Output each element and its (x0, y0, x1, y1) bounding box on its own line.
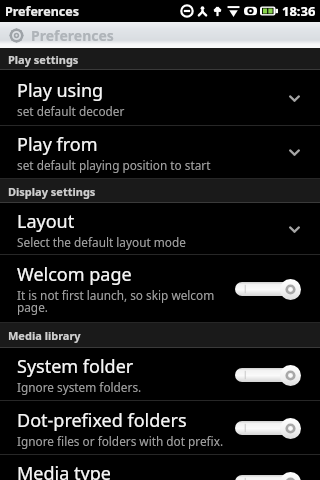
staticText: Layout (17, 209, 75, 234)
button[interactable]: Play using (0, 70, 320, 126)
button[interactable]: System folder (0, 348, 320, 401)
staticText: Media library (8, 328, 81, 343)
staticText: Ignore system folders. (17, 379, 142, 395)
staticText: Media type (17, 461, 111, 480)
staticText: Display settings (8, 184, 96, 199)
button[interactable]: Dot-prefixed folders (0, 401, 320, 455)
staticText: 18:36 (282, 2, 316, 20)
button[interactable]: Play from (0, 126, 320, 179)
button[interactable]: Toggle (235, 364, 301, 386)
button[interactable]: Toggle (235, 278, 301, 300)
staticText: Preferences (5, 3, 79, 20)
staticText: Ignore files or folders with dot prefix. (17, 433, 224, 449)
button[interactable]: Media type (0, 455, 320, 480)
staticText: set default decoder (17, 103, 125, 119)
button[interactable]: Welcom page (0, 255, 320, 323)
staticText: System folder (17, 354, 134, 379)
button[interactable]: Up (0, 22, 320, 48)
staticText: Preferences (31, 26, 114, 45)
staticText: Dot-prefixed folders (17, 408, 187, 433)
button[interactable]: Layout (0, 203, 320, 255)
button[interactable]: Toggle (235, 471, 301, 480)
staticText: It is not first launch, so skip welcom p… (17, 287, 228, 316)
staticText: Play using (17, 78, 104, 103)
staticText: Play settings (8, 52, 79, 67)
staticText: set default playing position to start (17, 157, 211, 173)
staticText: Select the default layout mode (17, 234, 186, 250)
button[interactable]: Toggle (235, 417, 301, 439)
staticText: Welcom page (17, 262, 132, 287)
staticText: Play from (17, 132, 98, 157)
